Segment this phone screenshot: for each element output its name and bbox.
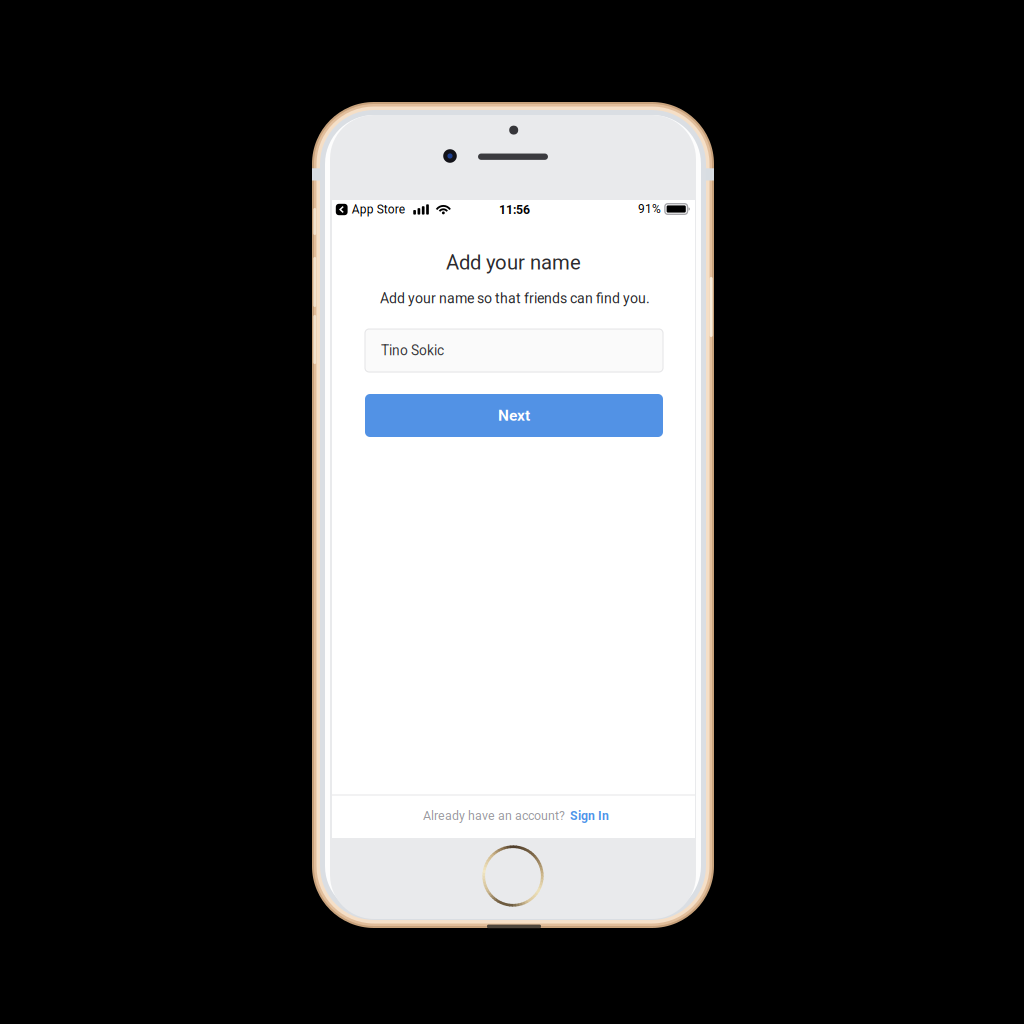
button[interactable]: Tino Sokic	[365, 329, 663, 372]
staticText: 11:56	[499, 203, 530, 217]
staticText: App Store	[352, 202, 405, 217]
button[interactable]: App Store	[336, 203, 416, 215]
staticText: Add your name so that friends can find y…	[380, 290, 650, 307]
button[interactable]: Sign In	[570, 809, 609, 823]
staticText: Next	[498, 406, 530, 424]
staticText: Already have an account?	[423, 808, 565, 823]
button[interactable]: Next	[365, 394, 663, 437]
staticText: 91%	[638, 202, 661, 216]
staticText: Tino Sokic	[381, 342, 444, 359]
staticText: Sign In	[570, 809, 609, 823]
staticText: Add your name	[446, 251, 581, 274]
